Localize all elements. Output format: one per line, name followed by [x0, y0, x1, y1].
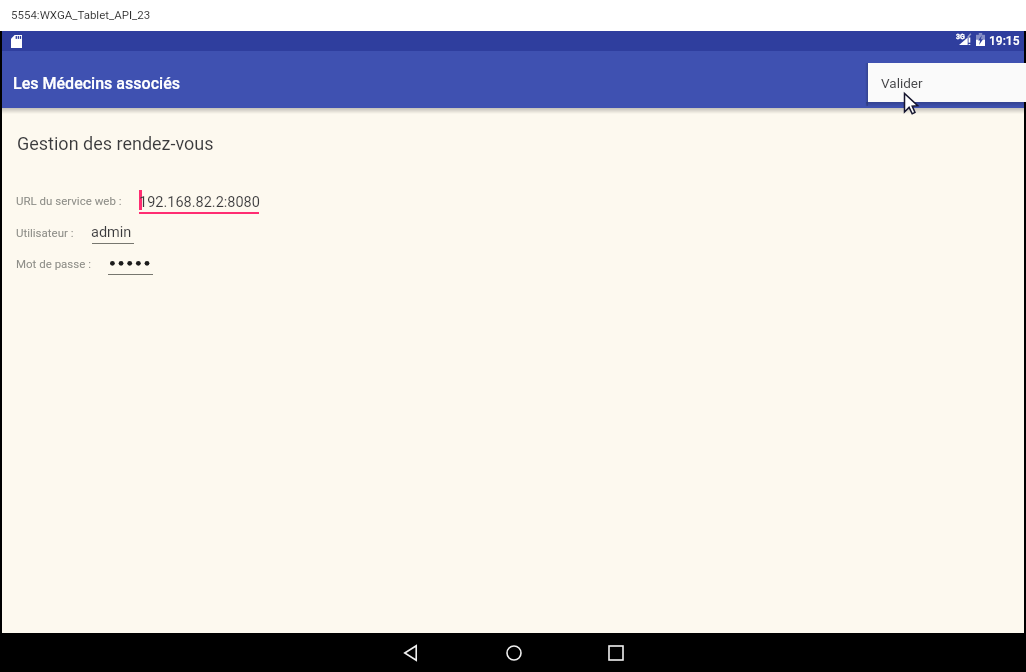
button[interactable]: Valider [868, 63, 1026, 102]
staticText: Utilisateur : [16, 226, 74, 239]
staticText: 19:15 [989, 34, 1020, 48]
staticText: Mot de passe : [16, 257, 91, 270]
staticText: 3G [956, 33, 965, 41]
staticText: 5554:WXGA_Tablet_API_23 [11, 8, 151, 21]
staticText: Gestion des rendez-vous [17, 133, 214, 154]
staticText: Les Médecins associés [13, 74, 180, 93]
staticText: admin [91, 224, 132, 241]
button[interactable]: Back [387, 633, 435, 672]
button[interactable]: Recent apps [592, 633, 640, 672]
staticText: Valider [881, 75, 923, 91]
button[interactable]: Home [490, 633, 538, 672]
staticText: URL du service web : [16, 194, 122, 207]
staticText: 192.168.82.2:8080 [139, 194, 260, 211]
